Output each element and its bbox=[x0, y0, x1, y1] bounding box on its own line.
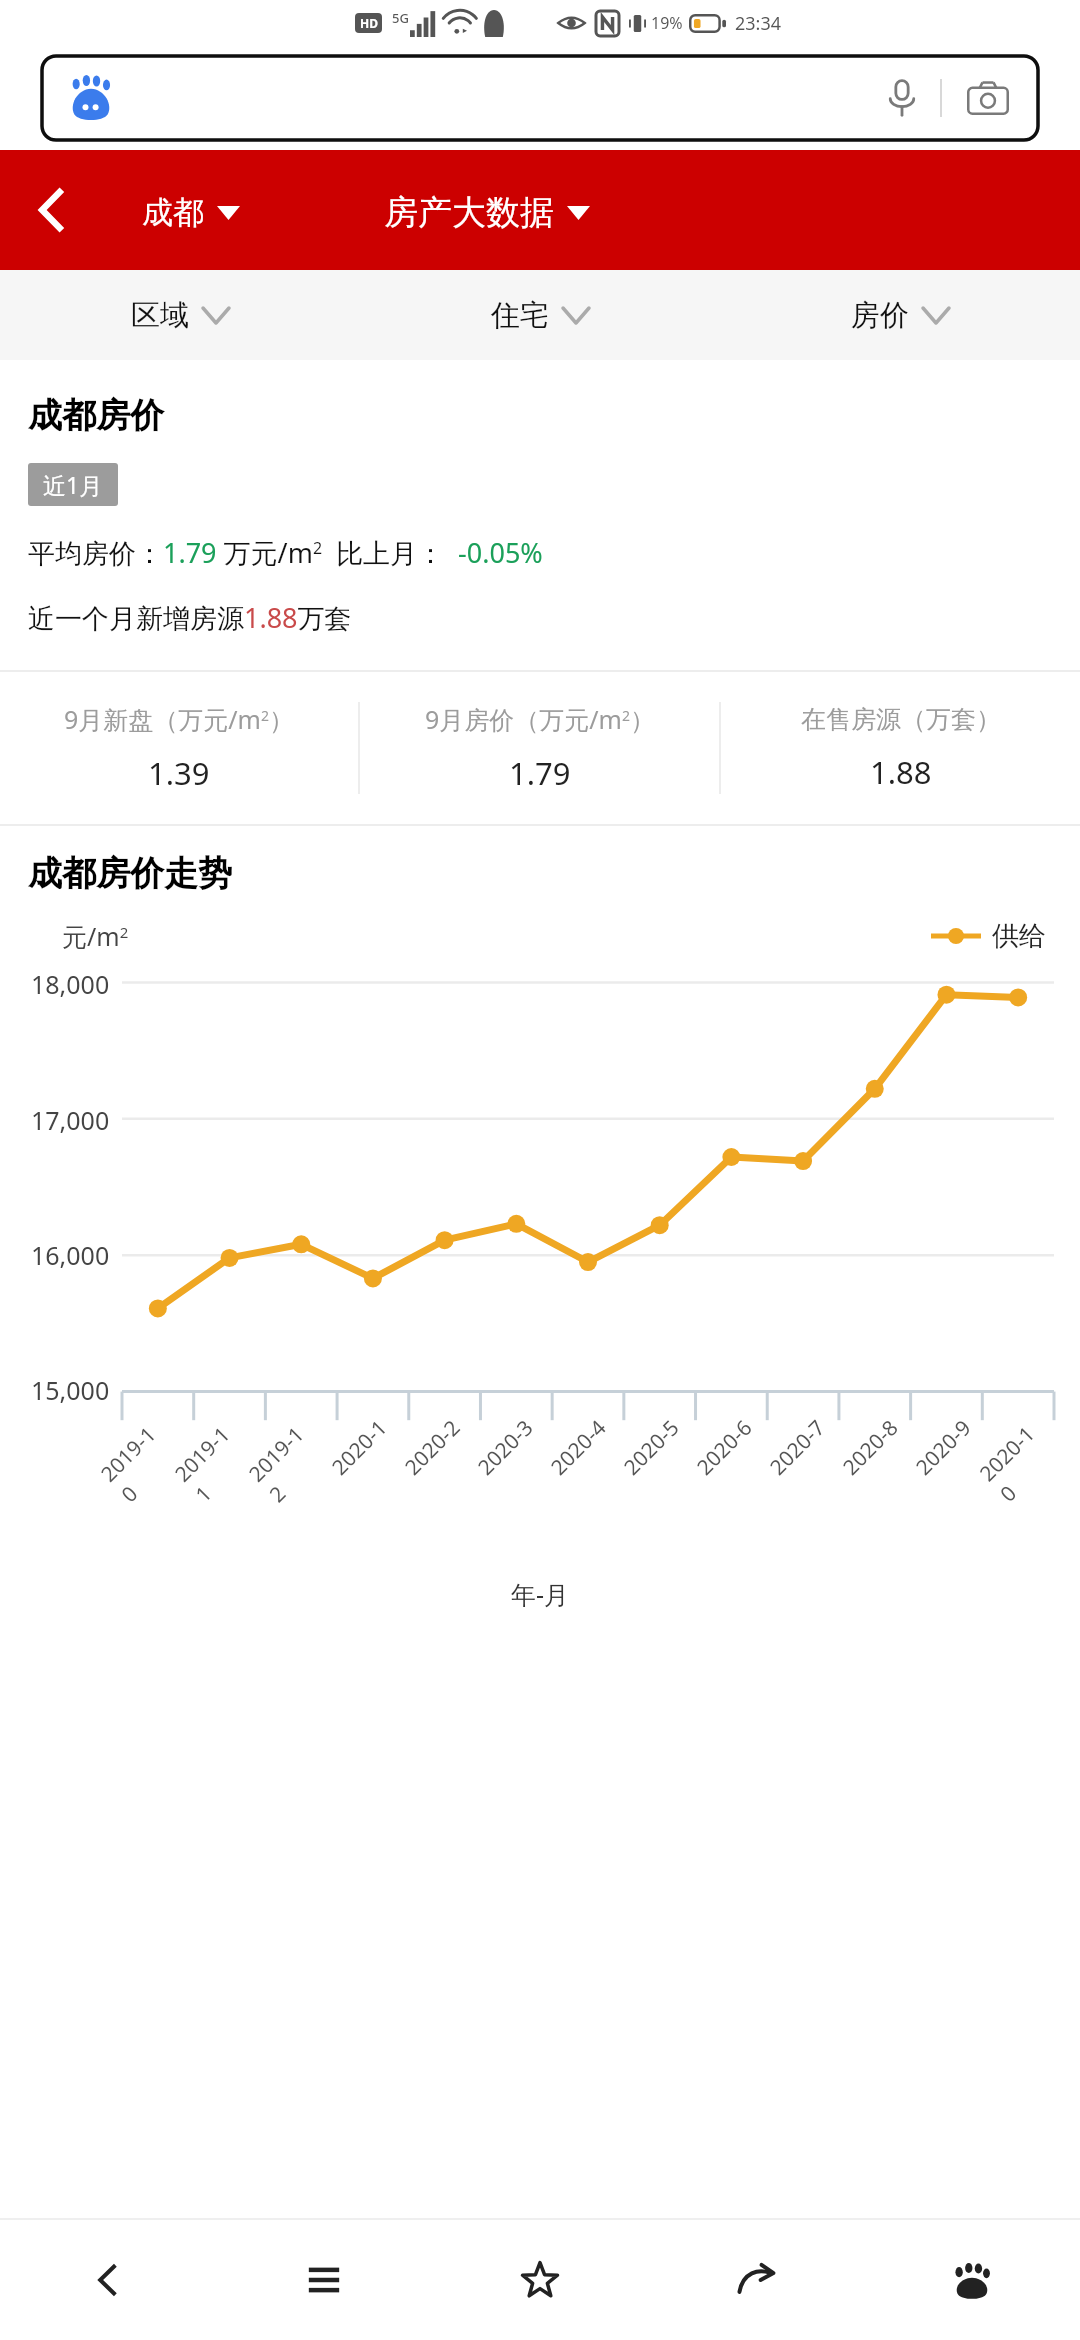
button[interactable]: 房价 bbox=[720, 270, 1080, 360]
staticText: 16,000 bbox=[31, 1238, 110, 1272]
staticText: 15,000 bbox=[31, 1373, 110, 1407]
staticText: 成都房价 bbox=[28, 394, 164, 437]
staticText: 2020-3 bbox=[472, 1414, 539, 1481]
staticText: 9月房价（万元/m2） bbox=[425, 702, 655, 736]
staticText: 成都房价走势 bbox=[28, 852, 232, 895]
staticText: 2020-7 bbox=[764, 1414, 831, 1481]
button[interactable]: Menu bbox=[216, 2220, 432, 2340]
button[interactable]: Back bbox=[0, 2220, 216, 2340]
staticText: 19% bbox=[651, 12, 683, 34]
button[interactable]: Back bbox=[16, 174, 88, 246]
button[interactable]: Share bbox=[648, 2220, 864, 2340]
staticText: 5G bbox=[392, 9, 409, 27]
staticText: 18,000 bbox=[31, 967, 110, 1001]
staticText: 2020-9 bbox=[910, 1414, 977, 1481]
staticText: HD bbox=[360, 15, 378, 31]
staticText: 2019-12 bbox=[242, 1415, 336, 1509]
staticText: 成都 bbox=[142, 193, 204, 232]
button[interactable]: 房产大数据 bbox=[378, 185, 596, 240]
button[interactable]: 住宅 bbox=[360, 270, 720, 360]
staticText: 年-月 bbox=[511, 1577, 570, 1611]
button[interactable]: Home bbox=[864, 2220, 1080, 2340]
staticText: 2020-1 bbox=[326, 1414, 393, 1481]
button[interactable]: 供给 bbox=[931, 919, 1046, 953]
staticText: 2020-8 bbox=[837, 1414, 904, 1481]
staticText: 2019-11 bbox=[168, 1415, 262, 1509]
staticText: 房价 bbox=[851, 297, 909, 334]
staticText: 2020-2 bbox=[399, 1414, 466, 1481]
button[interactable]: 9月新盘（万元/m2） bbox=[0, 672, 358, 824]
button[interactable]: 在售房源（万套） bbox=[721, 672, 1080, 824]
button[interactable]: Camera search bbox=[960, 70, 1016, 126]
button[interactable]: 9月房价（万元/m2） bbox=[360, 672, 719, 824]
button[interactable]: 区域 bbox=[0, 270, 360, 360]
staticText: 房产大数据 bbox=[384, 191, 554, 234]
staticText: 2020-5 bbox=[618, 1414, 685, 1481]
button[interactable]: Voice search bbox=[874, 70, 930, 126]
staticText: 平均房价：1.79 万元/m2 比上月： -0.05% bbox=[28, 534, 543, 571]
staticText: 在售房源（万套） bbox=[801, 704, 1001, 735]
staticText: 区域 bbox=[131, 297, 189, 334]
staticText: 1.88 bbox=[870, 751, 932, 793]
staticText: 住宅 bbox=[491, 297, 549, 334]
staticText: 2020-6 bbox=[691, 1414, 758, 1481]
button[interactable]: Favorite bbox=[432, 2220, 648, 2340]
staticText: 2020-10 bbox=[973, 1416, 1066, 1508]
staticText: 近一个月新增房源1.88万套 bbox=[28, 599, 352, 636]
staticText: 2019-10 bbox=[94, 1415, 188, 1509]
button[interactable]: 成都 bbox=[136, 187, 246, 238]
staticText: 供给 bbox=[992, 919, 1046, 953]
staticText: 17,000 bbox=[31, 1103, 110, 1137]
button[interactable]: Baidu bbox=[42, 56, 1038, 140]
staticText: 元/m2 bbox=[62, 919, 129, 953]
staticText: 23:34 bbox=[735, 11, 782, 36]
other: Baidu bbox=[68, 75, 114, 121]
staticText: 1.39 bbox=[148, 752, 210, 794]
staticText: 近1月 bbox=[43, 469, 103, 500]
staticText: 2020-4 bbox=[545, 1414, 612, 1481]
staticText: 1.79 bbox=[509, 752, 571, 794]
staticText: 9月新盘（万元/m2） bbox=[64, 702, 294, 736]
